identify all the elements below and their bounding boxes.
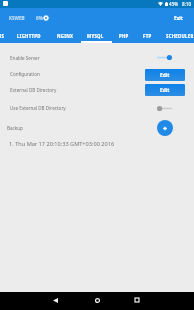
staticText: 45% bbox=[169, 1, 179, 7]
staticText: MYSQL bbox=[87, 33, 104, 39]
button[interactable]: Edit bbox=[145, 69, 185, 81]
staticText: Edit bbox=[160, 72, 170, 79]
button[interactable]: Edit bbox=[145, 84, 185, 96]
staticText: Configuration bbox=[10, 71, 40, 77]
button[interactable]: MYSQL bbox=[79, 28, 111, 43]
button[interactable]: Settings bbox=[43, 15, 49, 21]
staticText: Exit bbox=[174, 15, 183, 21]
staticText: NGINX bbox=[57, 33, 74, 39]
button[interactable]: Back bbox=[49, 294, 61, 306]
button[interactable]: Recents bbox=[131, 294, 143, 306]
staticText: 8:10 bbox=[182, 1, 192, 7]
button[interactable]: Enable Server bbox=[0, 51, 194, 64]
button[interactable]: NGINX bbox=[49, 28, 81, 43]
button[interactable]: External DB Directory bbox=[0, 83, 194, 96]
button[interactable]: US bbox=[0, 28, 17, 43]
button[interactable]: 1. Thu Mar 17 20:10:33 GMT+03:00 2016 bbox=[0, 137, 194, 148]
staticText: LIGHTTPD bbox=[17, 33, 41, 39]
staticText: US bbox=[0, 33, 5, 39]
staticText: SCHEDULER bbox=[166, 33, 194, 39]
staticText: KSWEB bbox=[9, 15, 25, 21]
staticText: Use External DB Directory bbox=[10, 105, 66, 111]
button[interactable]: PHP bbox=[108, 28, 140, 43]
button[interactable]: Configuration bbox=[0, 67, 194, 80]
staticText: 1. Thu Mar 17 20:10:33 GMT+03:00 2016 bbox=[9, 140, 115, 148]
staticText: PHP bbox=[119, 33, 129, 39]
staticText: External DB Directory bbox=[10, 87, 57, 93]
staticText: Edit bbox=[160, 87, 170, 94]
staticText: Enable Server bbox=[10, 55, 40, 61]
button[interactable]: Exit bbox=[170, 11, 186, 24]
button[interactable]: Home bbox=[91, 294, 103, 306]
button[interactable]: LIGHTTPD bbox=[13, 28, 45, 43]
button[interactable]: FTP bbox=[131, 28, 163, 43]
button[interactable] bbox=[157, 55, 172, 60]
staticText: FTP bbox=[143, 33, 152, 39]
staticText: Backup bbox=[7, 125, 23, 131]
button[interactable]: Use External DB Directory bbox=[0, 101, 194, 114]
button[interactable] bbox=[157, 106, 172, 111]
button[interactable]: SCHEDULER bbox=[164, 28, 194, 43]
staticText: 6% bbox=[36, 15, 43, 21]
button[interactable]: Add backup bbox=[157, 120, 173, 136]
